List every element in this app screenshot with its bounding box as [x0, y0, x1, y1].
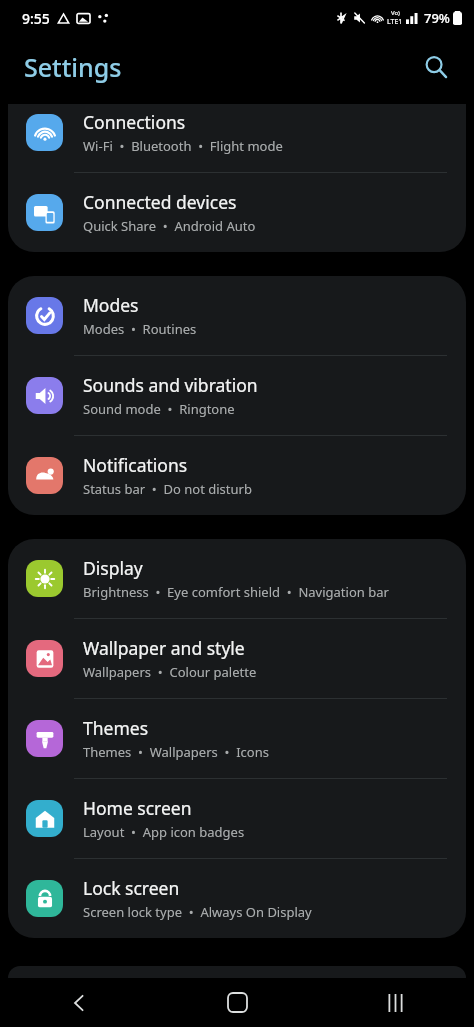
- button[interactable]: Home: [158, 978, 316, 1027]
- button[interactable]: Lock screen: [8, 859, 466, 938]
- button[interactable]: Sounds and vibration: [8, 356, 466, 435]
- staticText: Vo): [391, 9, 400, 17]
- staticText: Quick Share • Android Auto: [83, 217, 256, 235]
- staticText: Lock screen: [83, 876, 180, 900]
- button[interactable]: Notifications: [8, 436, 466, 515]
- staticText: Home screen: [83, 796, 192, 820]
- staticText: 9:55: [22, 9, 50, 28]
- staticText: Connected devices: [83, 190, 237, 214]
- staticText: Modes • Routines: [83, 320, 197, 338]
- button[interactable]: Recents: [316, 978, 474, 1027]
- staticText: Sound mode • Ringtone: [83, 400, 235, 418]
- staticText: Screen lock type • Always On Display: [83, 903, 312, 921]
- button[interactable]: Display: [8, 539, 466, 618]
- staticText: Themes • Wallpapers • Icons: [83, 743, 269, 761]
- staticText: Brightness • Eye comfort shield • Naviga…: [83, 583, 389, 601]
- staticText: Sounds and vibration: [83, 373, 258, 397]
- staticText: Wi-Fi • Bluetooth • Flight mode: [83, 137, 283, 155]
- button[interactable]: Connections: [8, 104, 466, 172]
- button[interactable]: Wallpaper and style: [8, 619, 466, 698]
- staticText: Themes: [83, 716, 149, 740]
- staticText: Connections: [83, 110, 186, 134]
- staticText: Settings: [24, 50, 122, 84]
- staticText: Notifications: [83, 453, 188, 477]
- staticText: Wallpaper and style: [83, 636, 245, 660]
- staticText: Display: [83, 556, 143, 580]
- button[interactable]: Home screen: [8, 779, 466, 858]
- button[interactable]: Connected devices: [8, 173, 466, 252]
- staticText: LTE1: [387, 17, 403, 27]
- button[interactable]: Search: [414, 45, 458, 89]
- staticText: Modes: [83, 293, 139, 317]
- staticText: 79%: [424, 9, 450, 27]
- button[interactable]: Back: [0, 978, 158, 1027]
- staticText: Wallpapers • Colour palette: [83, 663, 257, 681]
- button[interactable]: Modes: [8, 276, 466, 355]
- staticText: Status bar • Do not disturb: [83, 480, 252, 498]
- button[interactable]: Themes: [8, 699, 466, 778]
- staticText: Layout • App icon badges: [83, 823, 245, 841]
